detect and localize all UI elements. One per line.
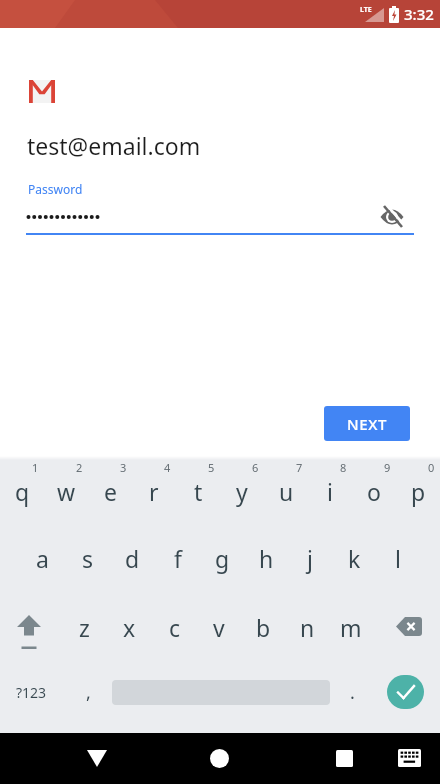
staticText: 4 xyxy=(164,460,171,474)
button[interactable]: o xyxy=(352,475,396,507)
button[interactable]: h xyxy=(244,542,288,574)
staticText: e xyxy=(104,476,117,507)
staticText: NEXT xyxy=(347,414,387,434)
staticText: n xyxy=(300,612,315,643)
button[interactable]: c xyxy=(152,611,197,643)
button[interactable]: d xyxy=(110,542,155,574)
staticText: f xyxy=(174,543,182,574)
button[interactable]: n xyxy=(285,611,329,643)
button[interactable] xyxy=(200,739,238,777)
staticText: v xyxy=(213,612,225,643)
staticText: t xyxy=(194,476,203,507)
staticText: test@email.com xyxy=(27,130,201,161)
button[interactable] xyxy=(78,739,116,777)
staticText: w xyxy=(57,476,76,507)
staticText: m xyxy=(340,612,362,643)
staticText: c xyxy=(169,612,181,643)
staticText: b xyxy=(256,612,271,643)
staticText: LTE xyxy=(360,5,372,15)
staticText: ?123 xyxy=(16,683,47,702)
button[interactable] xyxy=(325,739,363,777)
button[interactable] xyxy=(0,611,62,643)
staticText: k xyxy=(348,543,361,574)
staticText: y xyxy=(236,476,248,507)
staticText: u xyxy=(279,476,294,507)
staticText: Password xyxy=(28,181,83,197)
button[interactable]: NEXT xyxy=(324,406,410,441)
button[interactable]: r xyxy=(132,475,176,507)
button[interactable] xyxy=(387,675,424,709)
staticText: q xyxy=(15,476,30,507)
staticText: 7 xyxy=(296,460,303,474)
staticText: a xyxy=(36,543,49,574)
button[interactable]: e xyxy=(88,475,132,507)
button[interactable]: z xyxy=(62,611,107,643)
staticText: j xyxy=(307,543,313,574)
button[interactable]: k xyxy=(332,542,376,574)
button[interactable]: , xyxy=(74,675,102,709)
button[interactable] xyxy=(390,739,428,777)
staticText: p xyxy=(411,476,426,507)
staticText: i xyxy=(327,476,333,507)
staticText: 6 xyxy=(252,460,259,474)
button[interactable]: m xyxy=(329,611,373,643)
staticText: z xyxy=(79,612,90,643)
staticText: 0 xyxy=(428,460,435,474)
button[interactable]: ?123 xyxy=(8,675,54,709)
staticText: 2 xyxy=(76,460,83,474)
staticText: l xyxy=(395,543,401,574)
staticText: g xyxy=(215,543,230,574)
button[interactable]: i xyxy=(308,475,352,507)
button[interactable]: l xyxy=(376,542,420,574)
button[interactable] xyxy=(373,611,440,643)
button[interactable]: j xyxy=(288,542,332,574)
staticText: 5 xyxy=(208,460,215,474)
staticText: o xyxy=(367,476,381,507)
staticText: s xyxy=(82,543,94,574)
staticText: , xyxy=(86,680,91,705)
button[interactable]: b xyxy=(241,611,285,643)
button[interactable]: q xyxy=(0,475,44,507)
staticText: d xyxy=(125,543,140,574)
button[interactable]: x xyxy=(107,611,152,643)
button[interactable]: t xyxy=(176,475,220,507)
button[interactable]: u xyxy=(264,475,308,507)
button[interactable] xyxy=(374,201,410,233)
button[interactable]: s xyxy=(65,542,110,574)
staticText: 1 xyxy=(32,460,39,474)
button[interactable]: v xyxy=(197,611,241,643)
staticText: 3:32 xyxy=(404,4,434,24)
button[interactable]: . xyxy=(338,675,366,709)
staticText: 8 xyxy=(340,460,347,474)
button[interactable]: y xyxy=(220,475,264,507)
staticText: r xyxy=(149,476,159,507)
staticText: . xyxy=(350,680,355,705)
button[interactable]: g xyxy=(200,542,244,574)
button[interactable]: p xyxy=(396,475,440,507)
staticText: 9 xyxy=(384,460,391,474)
button[interactable]: f xyxy=(155,542,200,574)
button[interactable]: a xyxy=(20,542,65,574)
staticText: x xyxy=(123,612,136,643)
staticText: h xyxy=(259,543,274,574)
staticText: 3 xyxy=(120,460,127,474)
button[interactable]: w xyxy=(44,475,88,507)
